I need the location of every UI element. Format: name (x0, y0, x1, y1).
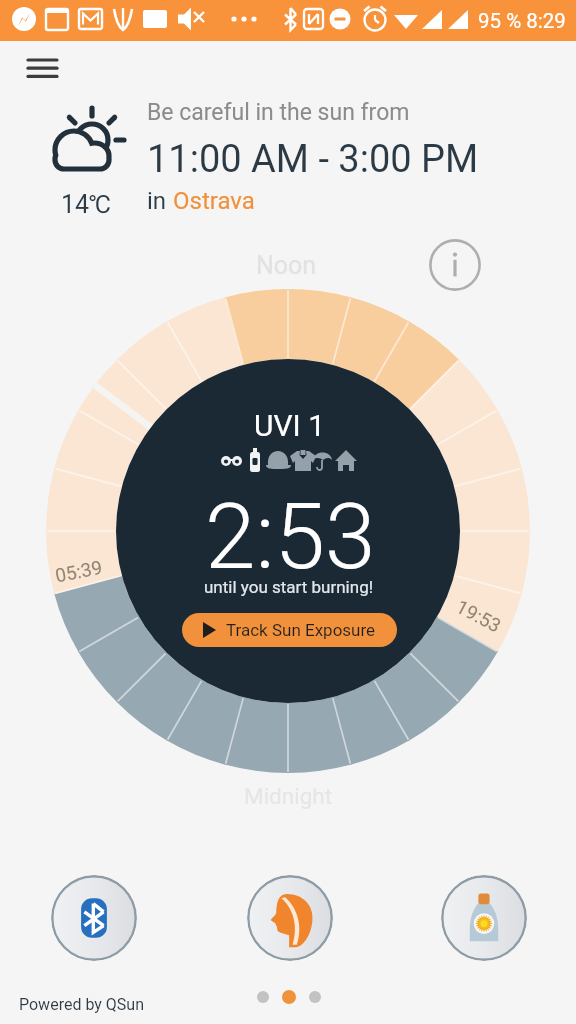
staticText: 95 % 8:29 (478, 9, 566, 33)
button[interactable]: Skin type (247, 875, 333, 961)
button[interactable]: Info (429, 239, 481, 291)
button[interactable]: Track Sun Exposure (182, 613, 397, 647)
staticText: Noon (256, 251, 317, 280)
staticText: Ostrava (173, 187, 255, 215)
button[interactable]: Menu (18, 50, 68, 100)
staticText: Be careful in the sun from (147, 99, 410, 126)
button[interactable]: Sunscreen (441, 875, 527, 961)
button[interactable]: Bluetooth (51, 875, 137, 961)
staticText: Midnight (244, 783, 333, 809)
staticText: Powered by QSun (19, 995, 144, 1014)
staticText: 2:53 (205, 484, 376, 591)
staticText: 05:39 (53, 556, 105, 586)
staticText: in (147, 187, 173, 215)
staticText: 19:53 (453, 595, 505, 637)
staticText: until you start burning! (204, 577, 374, 597)
staticText: 11:00 AM - 3:00 PM (147, 137, 479, 182)
staticText: 14℃ (61, 190, 112, 219)
staticText: UVI 1 (254, 408, 326, 443)
staticText: Track Sun Exposure (226, 620, 376, 640)
